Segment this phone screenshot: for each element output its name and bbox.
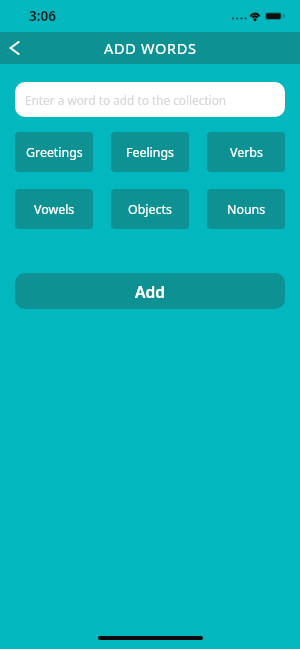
staticText: Verbs <box>230 144 263 161</box>
button[interactable]: Vowels <box>15 189 93 229</box>
button[interactable]: Objects <box>111 189 189 229</box>
staticText: Enter a word to add to the collection <box>25 92 227 108</box>
staticText: Objects <box>128 201 172 218</box>
button[interactable]: Back <box>0 33 30 63</box>
button[interactable]: Greetings <box>15 132 93 172</box>
staticText: 3:06 <box>29 7 56 25</box>
button[interactable]: Nouns <box>207 189 285 229</box>
staticText: ADD WORDS <box>104 38 197 58</box>
staticText: Vowels <box>34 201 75 218</box>
button[interactable]: Verbs <box>207 132 285 172</box>
button[interactable]: Word input field <box>15 82 285 117</box>
button[interactable]: Add <box>15 273 285 309</box>
staticText: Add <box>135 281 166 302</box>
staticText: Feelings <box>126 144 175 161</box>
button[interactable]: Feelings <box>111 132 189 172</box>
staticText: Nouns <box>227 201 266 218</box>
staticText: Greetings <box>26 144 83 161</box>
